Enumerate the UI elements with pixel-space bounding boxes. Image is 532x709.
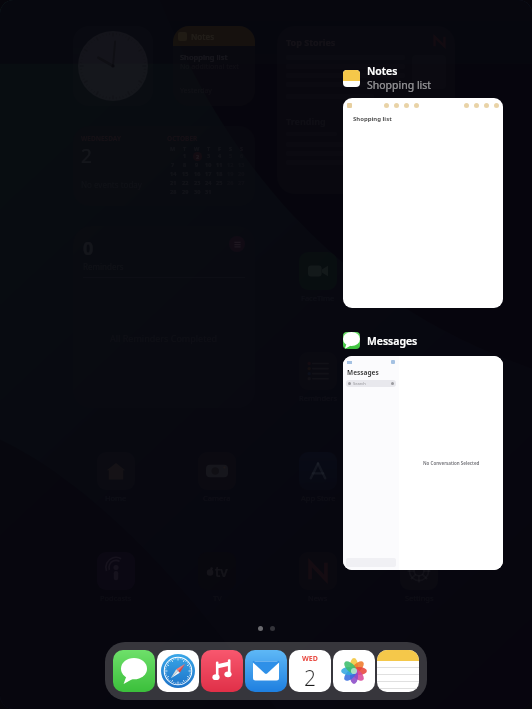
staticText: Messages <box>367 334 418 348</box>
staticText: Notes <box>367 64 398 78</box>
button[interactable]: Home <box>93 452 139 503</box>
button[interactable]: App Store <box>295 452 341 503</box>
button[interactable]: Shopping list <box>343 98 503 308</box>
button[interactable]: Podcasts <box>93 552 139 603</box>
staticText: OCTOBER <box>167 134 198 143</box>
button[interactable]: Messages <box>112 649 156 693</box>
button[interactable]: Calendar <box>288 649 332 693</box>
button[interactable]: Music <box>200 649 244 693</box>
staticText: 2 <box>304 664 316 692</box>
button[interactable]: Notes <box>376 649 420 693</box>
button[interactable]: Camera <box>194 452 240 503</box>
staticText: Top Stories <box>286 36 336 48</box>
staticText: Shopping list <box>180 52 228 62</box>
staticText: 22 <box>182 179 189 186</box>
button[interactable]: Messages <box>343 356 503 570</box>
staticText: 23 <box>194 179 201 186</box>
button[interactable]: Messages <box>343 332 424 349</box>
button[interactable]: Safari <box>156 649 200 693</box>
staticText: 9 <box>195 161 199 168</box>
button[interactable]: Notes <box>343 64 438 92</box>
staticText: Shopping list <box>367 78 432 92</box>
staticText: No Conversation Selected <box>423 460 480 466</box>
staticText: Shopping list <box>353 115 392 123</box>
staticText: tv <box>215 562 228 581</box>
staticText: T <box>183 145 187 152</box>
staticText: WED <box>302 654 318 664</box>
staticText: 2 <box>81 143 92 169</box>
staticText: 0 <box>83 236 94 261</box>
staticText: 24 <box>205 179 212 186</box>
staticText: 8 <box>183 161 187 168</box>
staticText: 3 <box>207 152 211 159</box>
staticText: Messages <box>347 368 379 377</box>
staticText: Search <box>353 381 366 386</box>
staticText: F <box>218 145 222 152</box>
staticText: 2 <box>196 153 200 160</box>
staticText: S <box>240 145 244 152</box>
button[interactable]: Mail <box>244 649 288 693</box>
button[interactable]: News <box>295 552 341 603</box>
staticText: 28 <box>170 188 177 195</box>
staticText: T <box>207 145 211 152</box>
staticText: Notes <box>191 31 215 42</box>
staticText: W <box>194 145 200 152</box>
staticText: S <box>229 145 233 152</box>
staticText: WEDNESDAY <box>81 134 121 143</box>
staticText: 29 <box>182 188 189 195</box>
staticText: 25 <box>216 179 223 186</box>
button[interactable]: Photos <box>332 649 376 693</box>
button[interactable]: FaceTime <box>295 252 341 303</box>
staticText: 30 <box>194 188 201 195</box>
button[interactable]: Settings <box>396 552 442 603</box>
